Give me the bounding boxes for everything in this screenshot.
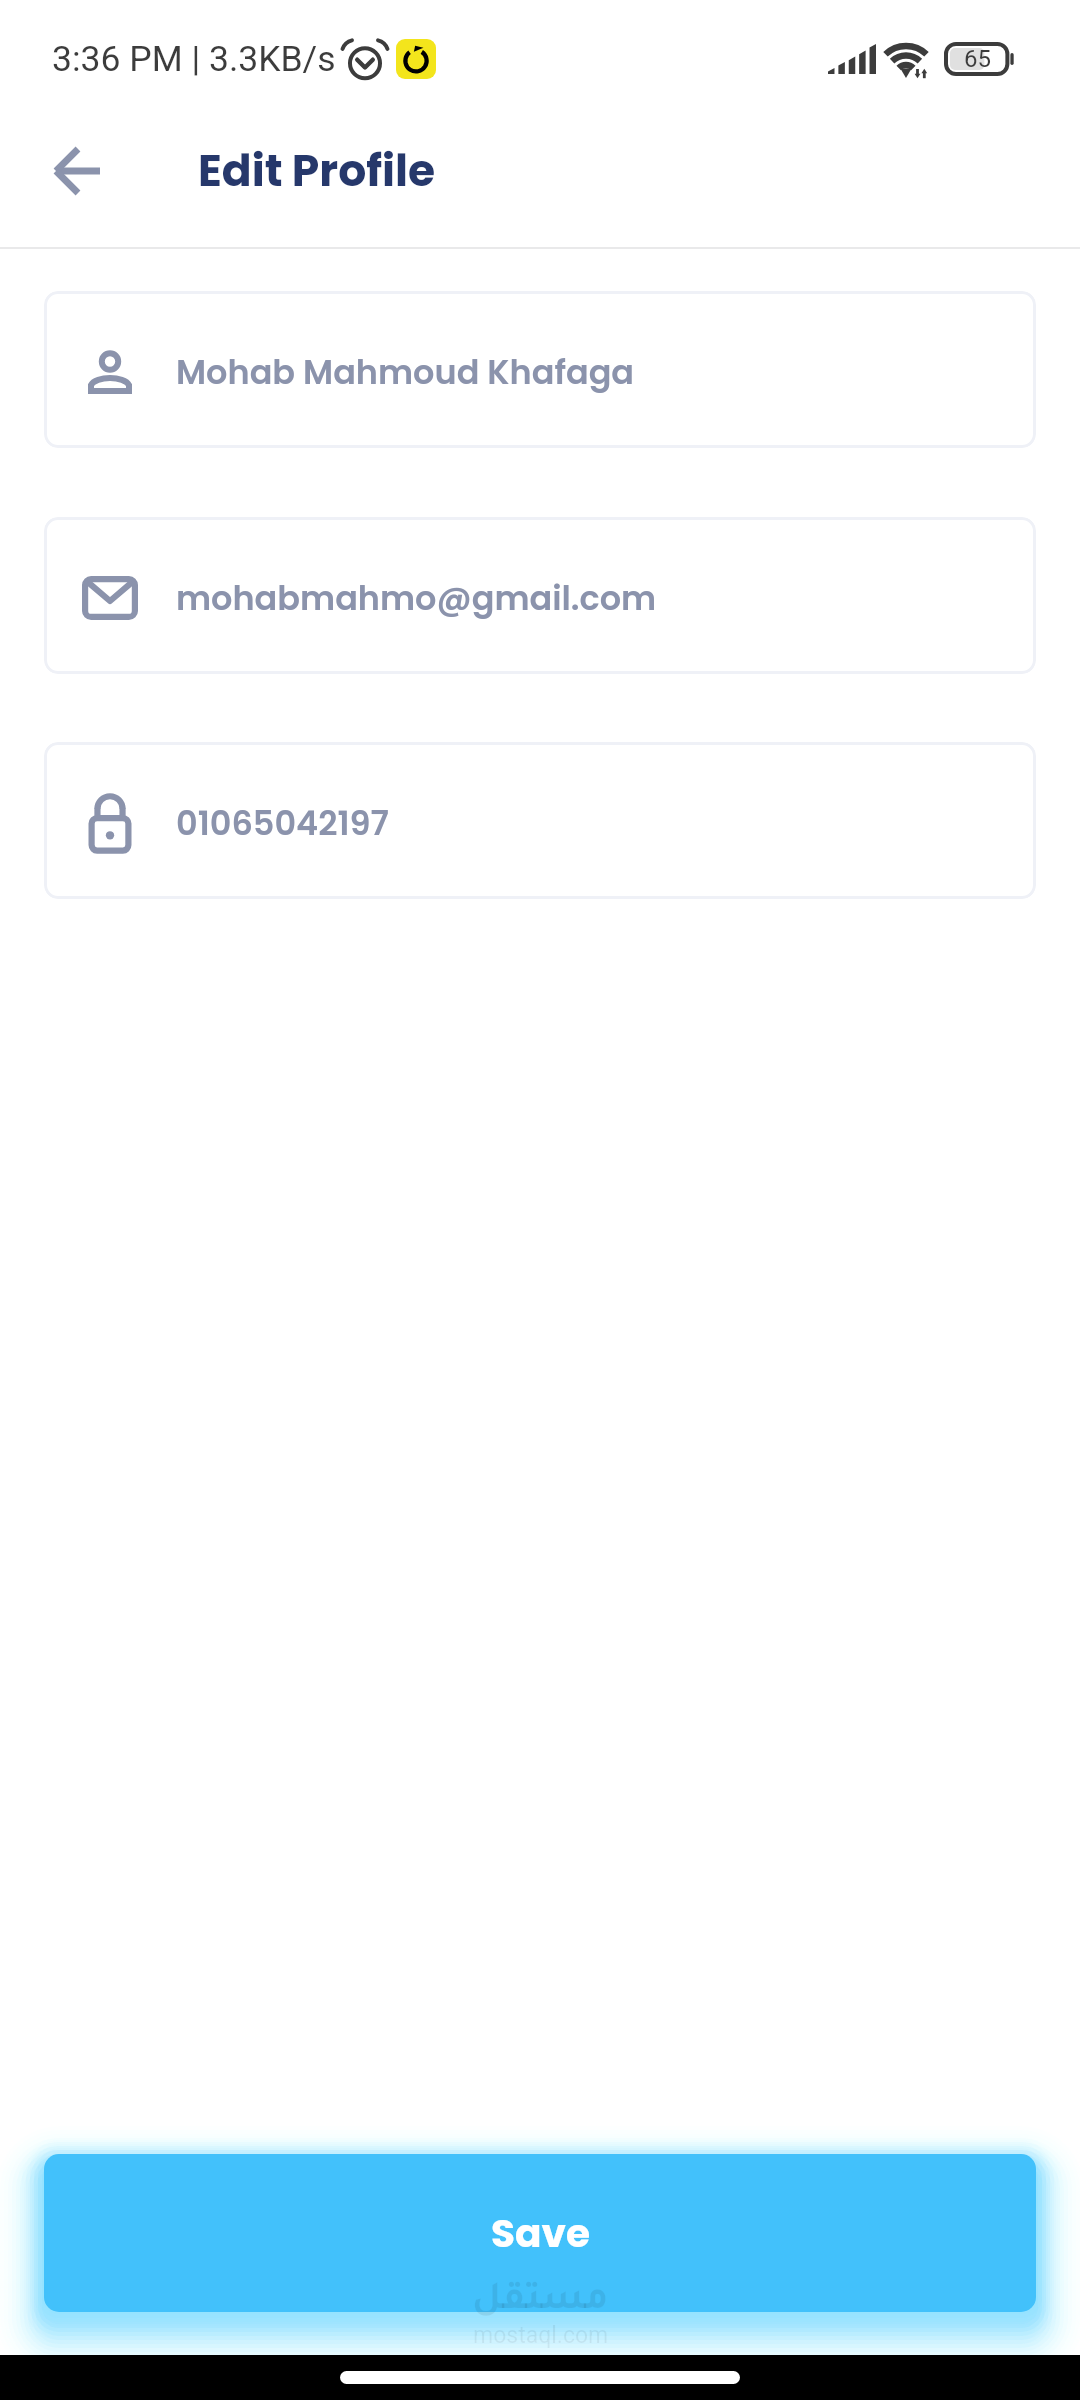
button[interactable]: Save xyxy=(44,2154,1036,2312)
button[interactable]: Mohab Mahmoud Khafaga xyxy=(44,291,1036,448)
button[interactable]: 01065042197 xyxy=(44,742,1036,899)
staticText: Save xyxy=(491,2206,590,2261)
staticText: mostaql.com xyxy=(473,2322,609,2349)
button[interactable]: mohabmahmo@gmail.com xyxy=(44,517,1036,674)
button[interactable]: Back xyxy=(31,124,125,218)
staticText: Mohab Mahmoud Khafaga xyxy=(176,349,635,396)
staticText: Edit Profile xyxy=(198,140,436,202)
staticText: 3:36 PM | 3.3KB/s xyxy=(52,38,336,80)
staticText: 01065042197 xyxy=(176,800,389,847)
staticText: mohabmahmo@gmail.com xyxy=(176,575,657,622)
staticText: 65 xyxy=(964,45,991,73)
staticText: مستقل xyxy=(472,2282,609,2322)
